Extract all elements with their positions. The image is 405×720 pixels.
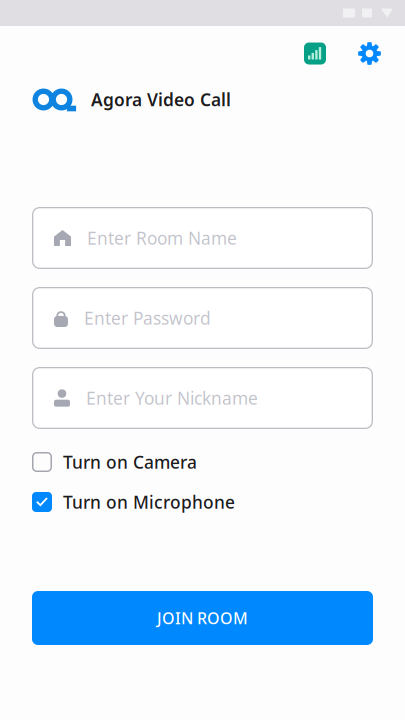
- button[interactable]: Enter Room Name: [32, 207, 373, 269]
- button[interactable]: JOIN ROOM: [32, 591, 373, 645]
- button[interactable]: Enter Password: [32, 287, 373, 349]
- staticText: Agora Video Call: [91, 88, 231, 111]
- staticText: Turn on Microphone: [63, 490, 235, 513]
- staticText: Enter Password: [84, 306, 211, 329]
- staticText: JOIN ROOM: [157, 607, 248, 629]
- button[interactable]: Enter Your Nickname: [32, 367, 373, 429]
- staticText: Turn on Camera: [63, 450, 197, 473]
- staticText: Enter Your Nickname: [86, 386, 258, 409]
- button[interactable]: Turn on Camera: [32, 452, 373, 472]
- button[interactable]: Turn on Microphone: [32, 492, 373, 512]
- staticText: Enter Room Name: [87, 226, 237, 249]
- button[interactable]: Settings: [358, 42, 381, 65]
- button[interactable]: Network quality: [304, 42, 326, 64]
